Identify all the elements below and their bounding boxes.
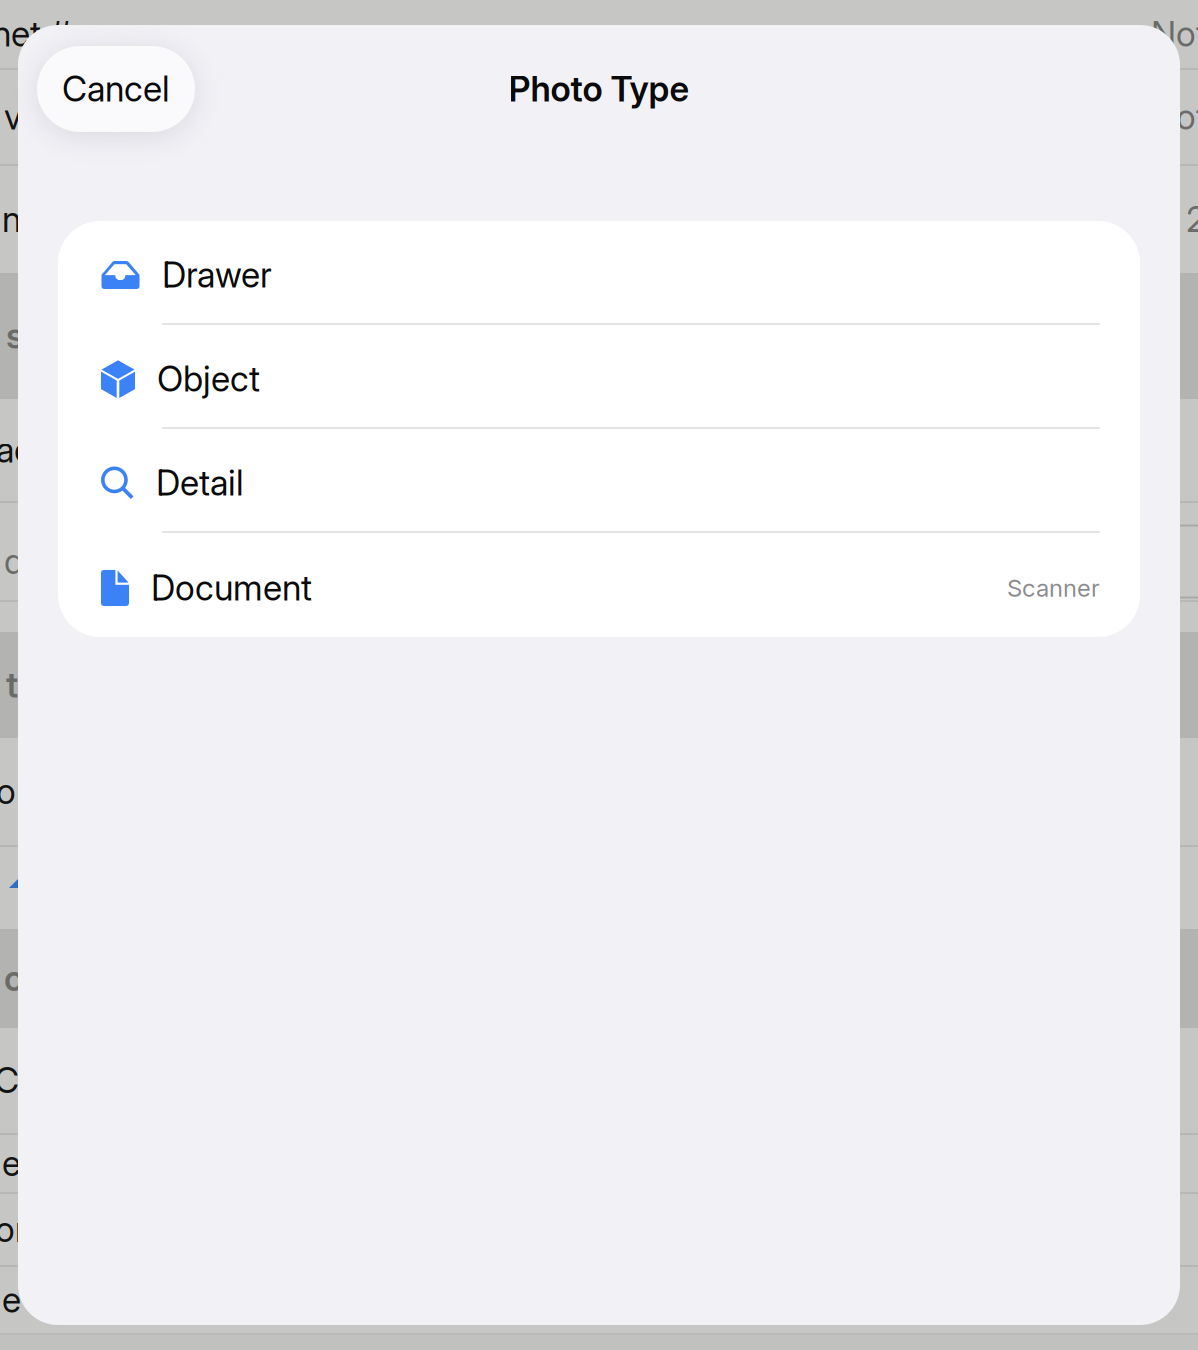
staticText: ci [4,957,31,999]
staticText: Co [0,1059,39,1101]
staticText: or [0,1208,27,1250]
staticText: e [2,1279,21,1321]
staticText: oh [0,770,35,812]
button[interactable]: Document [58,533,1140,637]
staticText: ve [4,96,41,138]
button[interactable]: Object [58,325,1140,429]
staticText: Photo Type [508,68,689,110]
staticText: s [6,315,24,357]
button[interactable]: Detail [58,429,1140,533]
staticText: d [4,540,24,582]
staticText: Detail [156,462,244,504]
staticText: Object [157,358,260,400]
button[interactable]: Cancel [37,46,195,132]
staticText: Not Set [1151,13,1198,55]
staticText: Not Set [1151,96,1198,138]
staticText: Drawer [162,254,272,296]
staticText: e [2,1142,21,1184]
staticText: net # [0,13,71,55]
staticText: Cancel [62,68,170,110]
staticText: nt [2,198,32,240]
button[interactable]: Drawer [58,221,1140,325]
staticText: ac [0,429,33,471]
staticText: Scanner [1007,573,1100,602]
staticText: Document [151,567,312,609]
staticText: 2 [1186,198,1198,240]
staticText: to [6,664,38,706]
